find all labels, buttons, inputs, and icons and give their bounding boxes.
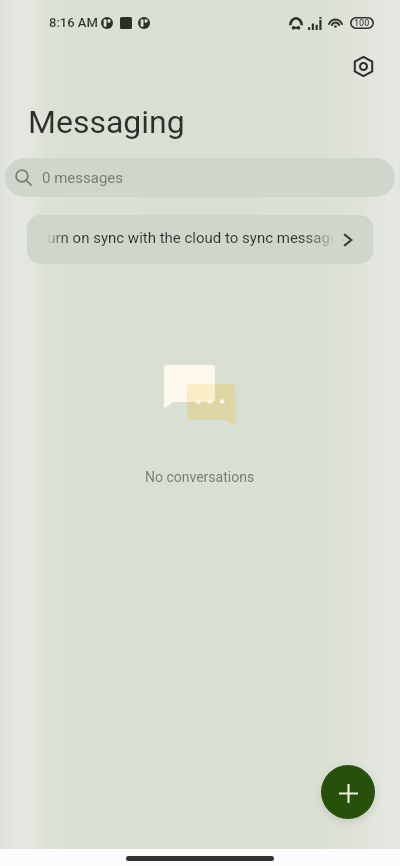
button[interactable]: 0 messages: [5, 158, 395, 197]
staticText: No conversations: [145, 469, 255, 485]
staticText: 8:16 AM: [49, 15, 98, 30]
button[interactable]: New conversation: [321, 765, 375, 819]
staticText: 100: [354, 18, 370, 29]
button[interactable]: Turn on sync with the cloud to sync mess…: [27, 215, 373, 264]
staticText: Turn on sync with the cloud to sync mess…: [39, 229, 335, 247]
staticText: 0 messages: [42, 169, 124, 187]
button[interactable]: Settings: [347, 50, 380, 83]
staticText: Messaging: [28, 103, 185, 141]
